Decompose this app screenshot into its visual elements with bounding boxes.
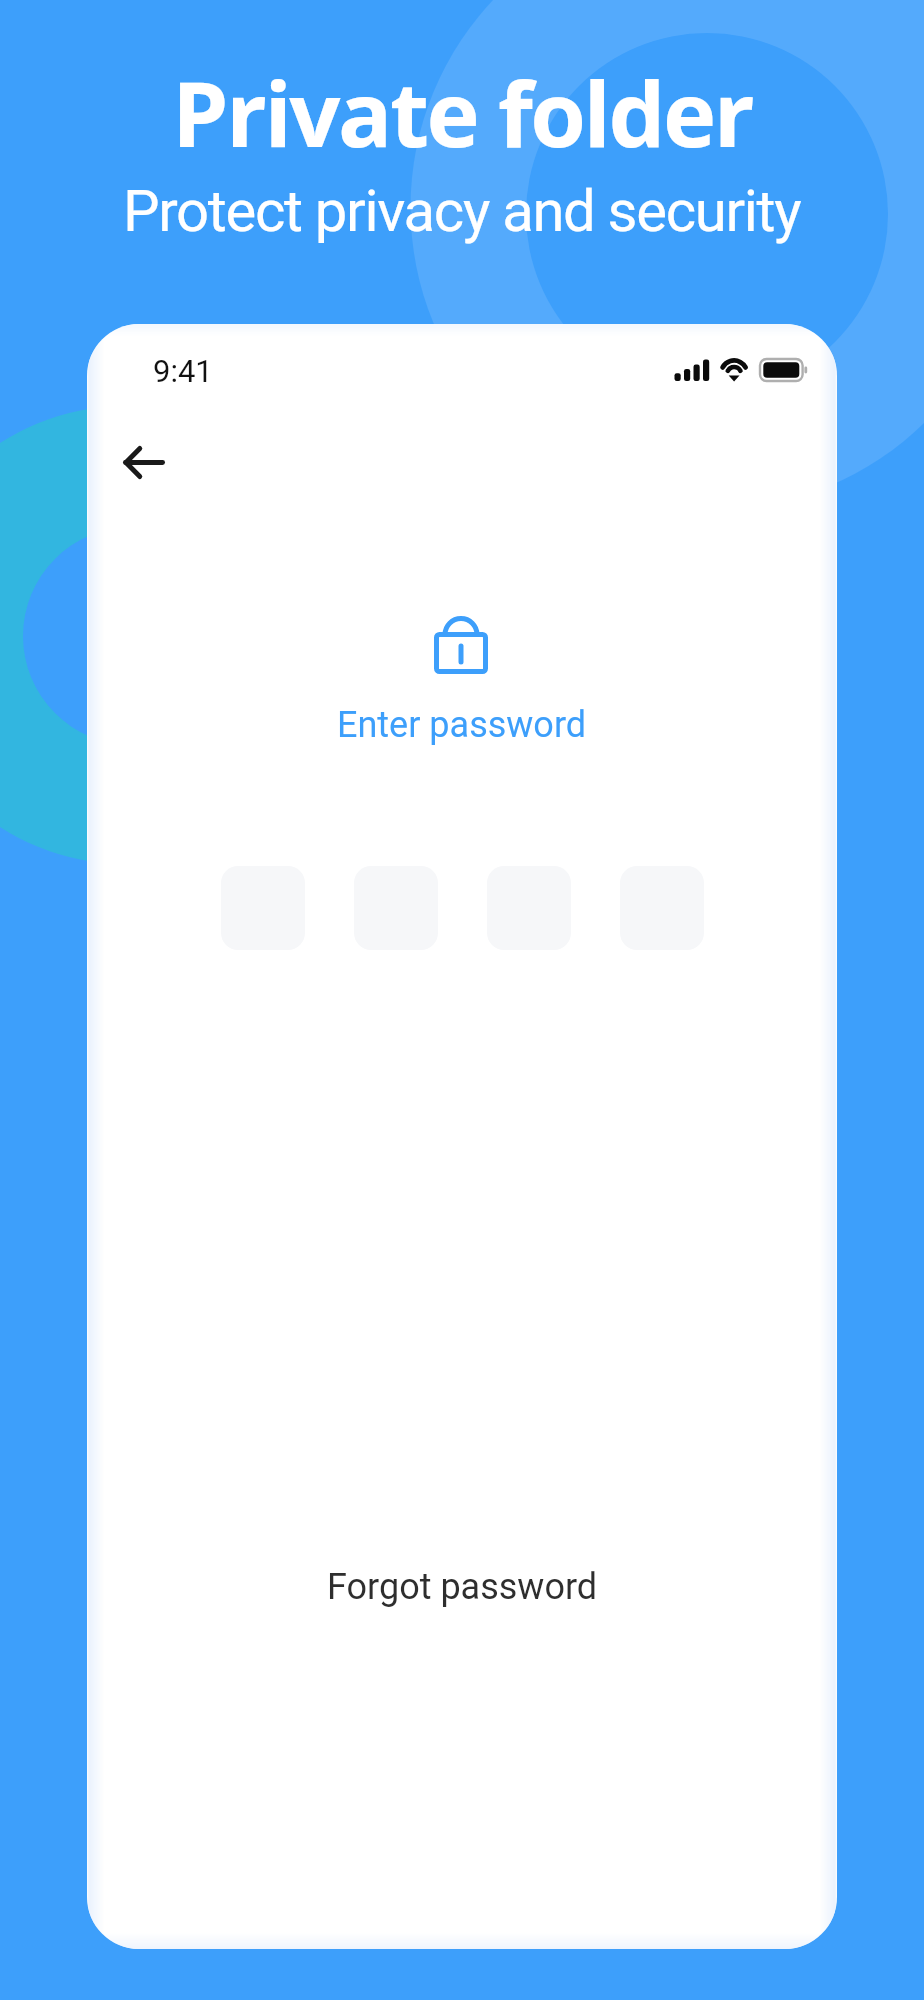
- button[interactable]: Forgot password: [311, 1556, 614, 1618]
- staticText: Protect privacy and security: [123, 177, 801, 245]
- staticText: Private folder: [172, 51, 753, 174]
- staticText: 9:41: [153, 353, 213, 389]
- button[interactable]: Back: [99, 417, 189, 507]
- staticText: Forgot password: [327, 1566, 598, 1608]
- staticText: Enter password: [337, 704, 587, 746]
